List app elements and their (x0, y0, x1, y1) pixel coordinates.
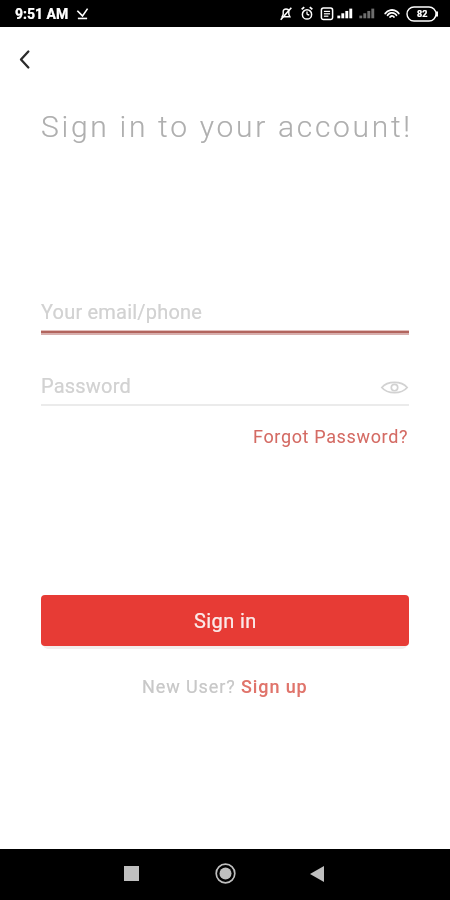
staticText: 82 (417, 9, 428, 20)
staticText: New User? (142, 676, 241, 697)
staticText: 9:51 AM (15, 6, 69, 22)
staticText: Sign in (194, 609, 257, 632)
button[interactable]: Home (201, 849, 249, 900)
button[interactable]: Back (293, 849, 341, 900)
staticText: Your email/phone (41, 300, 203, 323)
button[interactable]: Back (2, 37, 46, 81)
button[interactable]: Forgot Password? (253, 426, 409, 447)
button[interactable]: Show password (380, 372, 408, 402)
button[interactable]: Sign in (41, 595, 409, 646)
button[interactable]: Sign up (241, 676, 308, 697)
staticText: Sign in to your account! (41, 109, 413, 144)
button[interactable]: Recents (107, 849, 155, 900)
staticText: Password (41, 374, 131, 397)
